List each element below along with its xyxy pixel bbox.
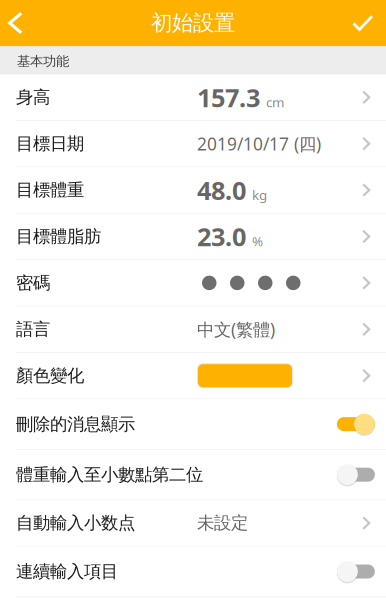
staticText: 自動輸入小数点 — [16, 512, 135, 534]
staticText: 顏色變化 — [16, 365, 84, 386]
staticText: 刪除的消息顯示 — [16, 413, 135, 435]
staticText: % — [252, 232, 263, 250]
button[interactable]: 目標體重 — [0, 167, 386, 214]
button[interactable]: 顏色變化 — [0, 353, 386, 399]
staticText: 初始設置 — [151, 10, 235, 36]
staticText: 體重輸入至小數點第二位 — [16, 464, 203, 485]
button[interactable]: 連續輸入項目 — [0, 547, 386, 597]
staticText: kg — [252, 186, 267, 204]
staticText: 目標體重 — [16, 179, 84, 201]
staticText: 語言 — [16, 319, 50, 340]
button[interactable]: 密碼 — [0, 260, 386, 307]
button[interactable]: 目標體脂肪 — [0, 214, 386, 260]
button[interactable]: Back — [0, 0, 44, 46]
staticText: 目標體脂肪 — [16, 226, 101, 247]
staticText: 未設定 — [197, 512, 248, 534]
staticText: 23.0 — [197, 220, 246, 253]
button[interactable]: 身高 — [0, 75, 386, 121]
button[interactable]: 目標日期 — [0, 121, 386, 167]
button[interactable]: 體重輸入至小數點第二位 — [0, 450, 386, 500]
staticText: cm — [266, 93, 284, 111]
staticText: 2019/10/17 (四) — [197, 132, 321, 155]
staticText: 中文(繁體) — [197, 318, 275, 341]
staticText: 身高 — [16, 87, 50, 108]
staticText: 目標日期 — [16, 133, 84, 154]
staticText: 48.0 — [197, 173, 246, 207]
staticText: 157.3 — [197, 80, 260, 114]
staticText: 連續輸入項目 — [16, 561, 118, 582]
button[interactable]: Done — [340, 0, 386, 46]
button[interactable]: 語言 — [0, 307, 386, 353]
button[interactable]: 自動輸入小数点 — [0, 500, 386, 547]
staticText: 密碼 — [16, 272, 50, 294]
staticText: 基本功能 — [17, 53, 69, 69]
button[interactable]: 刪除的消息顯示 — [0, 399, 386, 450]
